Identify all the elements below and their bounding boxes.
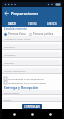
staticText: Entrega y Recepción (4, 85, 39, 90)
button[interactable]: Correo electrónico (2, 68, 62, 76)
staticText: Corresponde a una ampliación (8, 77, 44, 80)
button[interactable]: Corresponde a una ampliación (4, 76, 62, 80)
button[interactable]: Home (26, 109, 38, 119)
button[interactable]: Back (2, 7, 11, 20)
staticText: ANEXOS (47, 22, 57, 25)
staticText: Establecimiento (4, 27, 27, 31)
button[interactable]: CONTINUAR (22, 104, 42, 109)
button[interactable]: DATOS (2, 20, 22, 27)
staticText: Teléfono (4, 61, 15, 64)
button[interactable]: Responsable (2, 90, 62, 97)
button[interactable]: Domicilio (2, 44, 62, 52)
staticText: Nombre o razón social (4, 37, 31, 40)
staticText: Responsable (4, 91, 19, 94)
staticText: Domicilio (4, 45, 15, 48)
staticText: Localidad (4, 53, 16, 56)
staticText: Fecha (4, 98, 11, 101)
staticText: DATOS (8, 22, 16, 25)
button[interactable]: Persona física (4, 32, 26, 36)
button[interactable]: Nombre o razón social (2, 36, 62, 44)
staticText: ETAPAS (28, 22, 37, 25)
staticText: Preparaciones (11, 11, 39, 16)
button[interactable]: Recent apps (44, 109, 56, 119)
staticText: CONTINUAR (24, 105, 40, 109)
button[interactable]: Persona jurídica (29, 32, 54, 36)
button[interactable]: Back (8, 109, 20, 119)
button[interactable]: Fecha (2, 97, 62, 104)
staticText: Modificación de lo ya autorizado (8, 81, 47, 84)
staticText: Correo electrónico (4, 69, 26, 72)
button[interactable]: ANEXOS (42, 20, 62, 27)
button[interactable]: ETAPAS (22, 20, 42, 27)
button[interactable]: Teléfono (2, 60, 62, 68)
button[interactable]: Modificación de lo ya autorizado (4, 80, 62, 84)
button[interactable]: Localidad (2, 52, 62, 60)
staticText: Persona física (8, 32, 26, 36)
staticText: Persona jurídica (33, 32, 54, 36)
